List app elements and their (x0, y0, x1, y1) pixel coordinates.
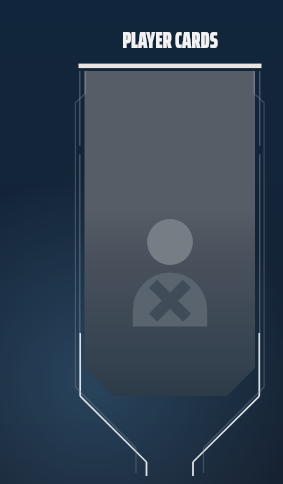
button[interactable]: PLAYER CARDS (122, 23, 218, 58)
